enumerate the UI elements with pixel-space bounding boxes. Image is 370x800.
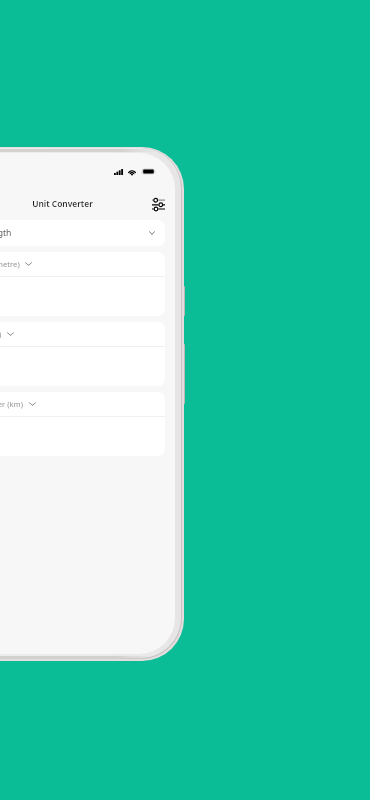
staticText: Length <box>0 227 12 239</box>
button[interactable]: Yard (yd) <box>0 322 165 386</box>
button[interactable]: Kilometer (km) <box>0 392 165 456</box>
staticText: Yard (yd) <box>0 329 2 339</box>
button[interactable]: Length <box>0 220 165 246</box>
staticText: Metre (metre) <box>0 259 20 269</box>
staticText: Kilometer (km) <box>0 399 24 409</box>
button[interactable]: Metre (metre) <box>0 252 165 316</box>
button[interactable]: Settings <box>148 194 168 214</box>
staticText: Unit Converter <box>0 198 175 209</box>
